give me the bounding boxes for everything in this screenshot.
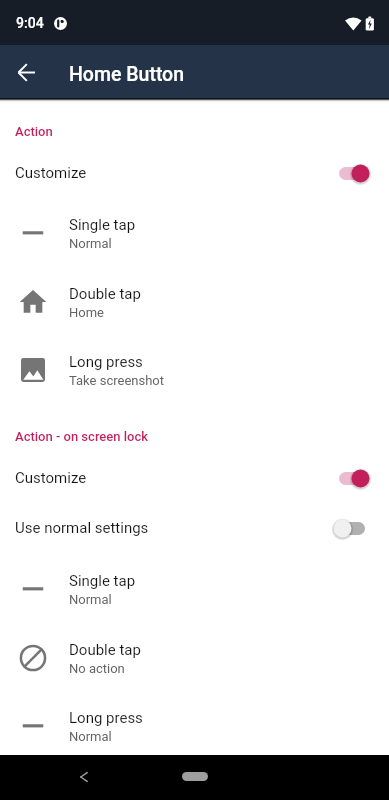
staticText: Normal <box>69 236 112 251</box>
staticText: Single tap <box>69 572 136 590</box>
button[interactable]: Customize <box>0 454 389 502</box>
button[interactable]: Home <box>182 772 208 781</box>
button[interactable]: Long press <box>0 339 389 401</box>
staticText: Long press <box>69 353 143 371</box>
button[interactable]: Single tap <box>0 558 389 620</box>
staticText: Double tap <box>69 641 141 659</box>
staticText: Long press <box>69 709 143 727</box>
button[interactable]: Double tap <box>0 627 389 689</box>
button[interactable]: Single tap <box>0 202 389 264</box>
staticText: Use normal settings <box>15 519 149 537</box>
button[interactable]: Navigate up <box>0 46 53 99</box>
button[interactable]: Back <box>68 761 100 793</box>
staticText: Normal <box>69 729 112 744</box>
staticText: Normal <box>69 592 112 607</box>
staticText: Customize <box>15 469 87 487</box>
staticText: Home <box>69 305 104 320</box>
staticText: Single tap <box>69 216 136 234</box>
staticText: Home Button <box>69 63 185 86</box>
button[interactable]: Customize <box>0 149 389 197</box>
button[interactable]: Long press <box>0 695 389 757</box>
staticText: Take screenshot <box>69 373 164 388</box>
button[interactable]: Use normal settings <box>0 504 389 552</box>
staticText: No action <box>69 661 125 676</box>
staticText: Action - on screen lock <box>15 429 149 444</box>
staticText: Double tap <box>69 285 141 303</box>
staticText: 9:04 <box>16 15 44 31</box>
staticText: Customize <box>15 164 87 182</box>
staticText: Action <box>15 124 53 139</box>
button[interactable]: Double tap <box>0 271 389 333</box>
